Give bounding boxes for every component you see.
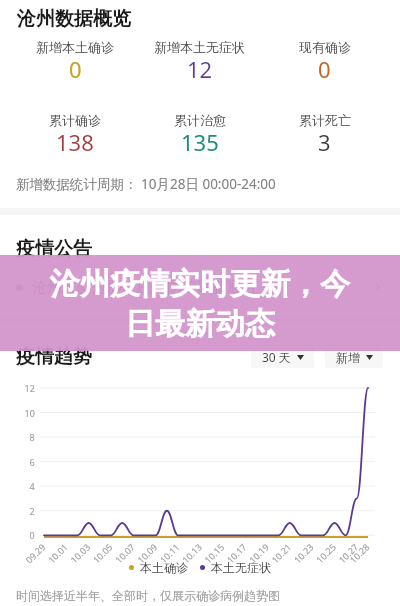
staticText: 12 bbox=[187, 54, 213, 84]
staticText: 疫情公告 bbox=[16, 237, 92, 261]
staticText: 138 bbox=[56, 127, 94, 157]
staticText: 0 bbox=[318, 54, 331, 84]
staticText: 累计治愈 bbox=[174, 112, 226, 128]
staticText: 沧州数据概览 bbox=[17, 7, 131, 31]
staticText: 本土无症状 bbox=[211, 560, 271, 575]
staticText: 新增数据统计周期： 10月28日 00:00-24:00 bbox=[16, 175, 276, 193]
button[interactable]: 新增 bbox=[325, 347, 383, 368]
staticText: 3 bbox=[318, 127, 331, 157]
staticText: 30 天 bbox=[262, 349, 291, 365]
button[interactable]: 30 天 bbox=[251, 346, 314, 368]
staticText: 累计死亡 bbox=[299, 112, 351, 128]
staticText: 本土确诊 bbox=[140, 560, 188, 575]
staticText: 沧州疫情实时更新，今日最新动态 bbox=[49, 265, 351, 343]
button[interactable]: 沧州市新冠肺炎疫情防控最新通告 bbox=[0, 264, 400, 310]
staticText: 累计确诊 bbox=[49, 112, 101, 128]
staticText: 0 bbox=[69, 54, 82, 84]
staticText: 新增本土确诊 bbox=[36, 39, 114, 55]
staticText: 时间选择近半年、全部时，仅展示确诊病例趋势图 bbox=[16, 588, 280, 603]
staticText: 现有确诊 bbox=[299, 39, 351, 55]
staticText: 135 bbox=[181, 127, 219, 157]
staticText: 沧州市新冠肺炎疫情防控最新通告 bbox=[32, 278, 257, 297]
staticText: 新增 bbox=[336, 350, 360, 365]
staticText: 疫情趋势 bbox=[16, 345, 92, 369]
staticText: 新增本土无症状 bbox=[154, 39, 245, 55]
